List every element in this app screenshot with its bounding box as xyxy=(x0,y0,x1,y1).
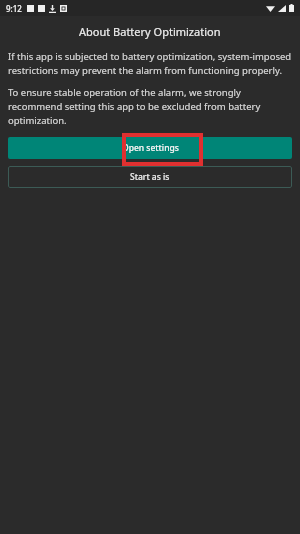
staticText: Start as is xyxy=(130,171,170,183)
button[interactable]: Start as is xyxy=(8,166,292,188)
button[interactable]: Open settings xyxy=(8,137,292,159)
staticText: If this app is subjected to battery opti… xyxy=(8,50,292,77)
staticText: To ensure stable operation of the alarm,… xyxy=(8,86,292,127)
staticText: Open settings xyxy=(122,142,179,154)
staticText: About Battery Optimization xyxy=(79,24,221,39)
staticText: 9:12 xyxy=(6,3,22,14)
